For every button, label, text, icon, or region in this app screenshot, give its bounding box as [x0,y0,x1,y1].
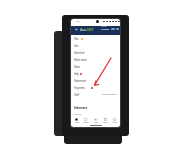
staticText: Zustatek [101,25,107,27]
staticText: Ucet [75,121,79,124]
button[interactable]: AusNET home [80,27,94,32]
button[interactable]: Menu [116,28,119,30]
staticText: Residential Plan A [102,93,118,96]
staticText: Meter reads [74,58,87,62]
button[interactable]: Gas [71,42,120,49]
staticText: Rates [74,65,80,69]
staticText: Solar feed [74,51,85,55]
staticText: Aus [80,27,87,32]
staticText: Statements [74,79,86,83]
button[interactable]: Statements [71,77,120,84]
staticText: Data [103,121,108,124]
button[interactable]: Help [71,70,120,77]
staticText: Tariff [74,93,80,97]
button[interactable]: Rates [71,63,120,70]
button[interactable]: Back [75,28,78,31]
button[interactable]: Balance [101,25,109,30]
staticText: NET [87,27,94,32]
button[interactable]: Ucet [72,118,81,124]
button[interactable]: Notifications [111,28,115,30]
button[interactable]: Solar feed [71,49,120,56]
button[interactable]: Data [101,118,110,124]
staticText: 1 240 Kc [101,27,109,30]
staticText: 9:41 [76,20,80,23]
staticText: Profil [112,121,117,124]
button[interactable]: Profil [110,118,119,124]
staticText: Plan [74,37,79,41]
staticText: Help [74,72,79,76]
staticText: Gas [74,44,79,48]
staticText: Properties [74,86,85,90]
button[interactable]: Properties [71,84,120,91]
button[interactable]: Plan [71,35,120,42]
staticText: Lide [94,121,98,124]
button[interactable]: Tariff [71,91,120,98]
button[interactable]: Meter reads [71,56,120,63]
staticText: Sluzby [83,121,89,124]
button[interactable]: Sluzby [81,118,90,124]
staticText: Informace [74,106,87,110]
staticText: Contact [74,112,82,115]
button[interactable]: Lide [91,118,100,124]
